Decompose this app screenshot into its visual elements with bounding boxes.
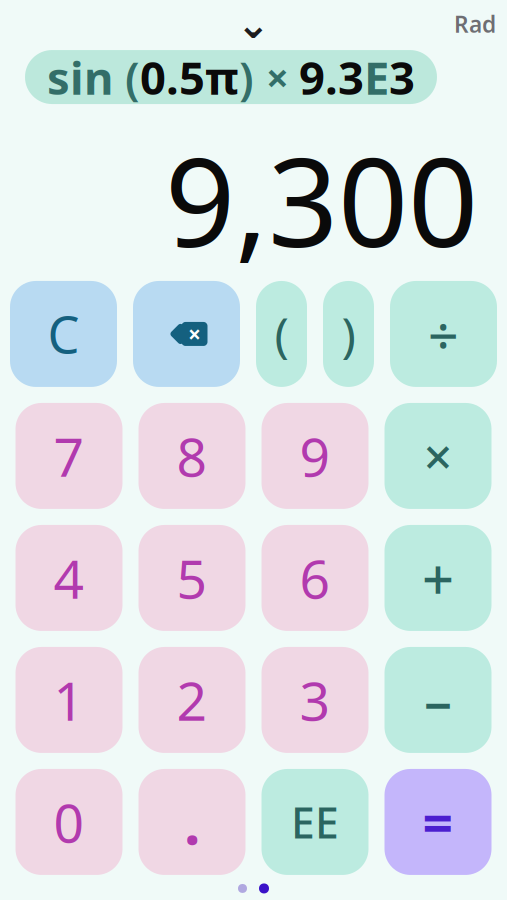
button[interactable]: Clear [10,281,117,387]
button[interactable]: 2 [138,647,245,753]
button[interactable]: Close parenthesis [323,281,374,387]
staticText: 2 [176,664,207,735]
staticText: ÷ [428,298,459,369]
staticText: 1 [53,664,84,735]
staticText: 0 [53,786,84,857]
staticText: 3 [389,47,415,107]
button[interactable]: 5 [138,525,245,631]
staticText: 0.5π [140,47,239,107]
button[interactable]: Collapse [223,7,283,41]
button[interactable]: Divide [390,281,497,387]
button[interactable]: Rad [454,9,507,39]
staticText: 3 [299,664,330,735]
staticText: ( [274,302,288,366]
staticText: 5 [176,542,207,613]
button[interactable]: 8 [138,403,245,509]
staticText: + [422,541,454,615]
staticText: C [47,300,79,368]
staticText: ) [341,302,355,366]
button[interactable]: Multiply [384,403,491,509]
staticText: ) [239,47,266,107]
button[interactable]: 0 [15,769,122,875]
staticText: 9,300 [165,118,478,281]
staticText: × [266,50,299,104]
button[interactable]: Subtract [384,647,491,753]
staticText: ( [113,47,140,107]
button[interactable]: Delete [133,281,240,387]
button[interactable]: 9 [261,403,368,509]
button[interactable]: 6 [261,525,368,631]
staticText: – [424,663,452,737]
staticText: Rad [454,9,496,39]
staticText: 4 [53,542,84,613]
button[interactable]: 1 [15,647,122,753]
staticText: 9 [299,420,330,491]
staticText: EE [291,794,339,850]
staticText: × [423,422,452,490]
button[interactable]: Exponent [261,769,368,875]
staticText: 6 [299,542,330,613]
staticText: ⌄ [236,1,270,47]
button[interactable]: Open parenthesis [256,281,307,387]
staticText: 8 [176,420,207,491]
staticText: . [184,783,200,861]
staticText: 7 [53,420,84,491]
staticText: × [188,319,201,349]
button[interactable]: Decimal point [138,769,245,875]
staticText: 9.3 [299,47,364,107]
staticText: E [364,47,389,107]
staticText: sin [47,47,113,107]
staticText: = [422,786,453,857]
button[interactable]: Equals [384,769,491,875]
button[interactable]: 4 [15,525,122,631]
button[interactable]: 7 [15,403,122,509]
button[interactable]: Add [384,525,491,631]
button[interactable]: 3 [261,647,368,753]
